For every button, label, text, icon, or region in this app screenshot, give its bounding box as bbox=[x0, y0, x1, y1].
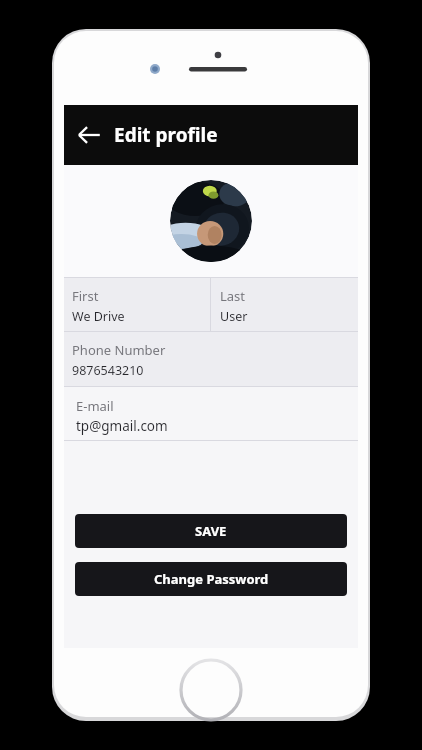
staticText: We Drive bbox=[72, 308, 125, 325]
staticText: E-mail bbox=[76, 397, 114, 415]
button[interactable]: Change Password bbox=[75, 562, 347, 596]
button[interactable]: Phone Number bbox=[64, 332, 358, 386]
staticText: Last bbox=[220, 287, 246, 305]
button[interactable]: Profile photo bbox=[170, 180, 252, 262]
staticText: Change Password bbox=[154, 570, 269, 588]
button[interactable]: SAVE bbox=[75, 514, 347, 548]
button[interactable]: First bbox=[64, 278, 210, 331]
button[interactable]: E-mail bbox=[64, 387, 358, 440]
button[interactable]: Last bbox=[211, 278, 358, 331]
staticText: 9876543210 bbox=[72, 362, 144, 379]
staticText: Phone Number bbox=[72, 341, 166, 359]
staticText: tp@gmail.com bbox=[76, 417, 168, 435]
button[interactable]: Back bbox=[68, 114, 110, 156]
staticText: Edit profile bbox=[114, 122, 218, 148]
staticText: First bbox=[72, 287, 99, 305]
staticText: SAVE bbox=[195, 522, 227, 540]
staticText: User bbox=[220, 308, 248, 325]
